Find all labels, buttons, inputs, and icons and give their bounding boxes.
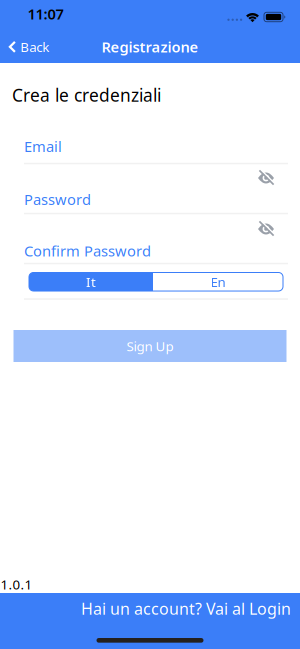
button[interactable]: Confirm Password [24,241,288,261]
staticText: Sign Up [126,337,173,355]
staticText: Back [20,38,49,56]
staticText: Hai un account? Vai al Login [81,598,291,619]
staticText: Confirm Password [24,241,151,260]
staticText: Email [24,136,62,156]
button[interactable]: Sign Up [13,330,286,362]
button[interactable]: En [153,272,283,291]
button[interactable]: Hai un account? Vai al Login [81,598,291,619]
button[interactable]: Show password [255,168,277,188]
button[interactable]: Show confirm password [255,219,277,239]
staticText: Registrazione [101,37,198,56]
staticText: It [86,273,96,291]
staticText: 1.0.1 [0,575,32,593]
button[interactable]: It [29,272,153,291]
button[interactable]: Password [24,189,288,211]
staticText: Crea le credenziali [12,83,161,106]
staticText: 11:07 [27,4,63,23]
staticText: Password [24,189,91,209]
button[interactable]: Back [8,38,49,56]
staticText: En [210,273,225,291]
button[interactable]: Email [24,136,288,161]
